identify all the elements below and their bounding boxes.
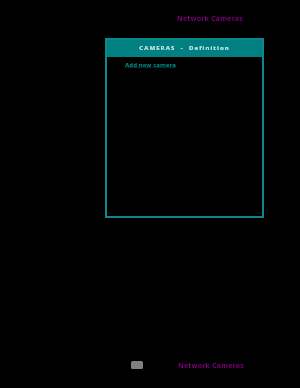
button[interactable]: CAMERAS - Definition (105, 38, 264, 57)
staticText: Add new camera (125, 61, 177, 69)
button[interactable]: Back (131, 361, 143, 369)
staticText: CAMERAS - Definition (139, 44, 230, 52)
button[interactable]: Network Cameras (177, 360, 245, 372)
staticText: Network Cameras (177, 14, 243, 24)
staticText: Network Cameras (178, 361, 244, 371)
button[interactable]: Network Cameras (176, 13, 244, 25)
button[interactable]: Add new camera (124, 60, 178, 70)
